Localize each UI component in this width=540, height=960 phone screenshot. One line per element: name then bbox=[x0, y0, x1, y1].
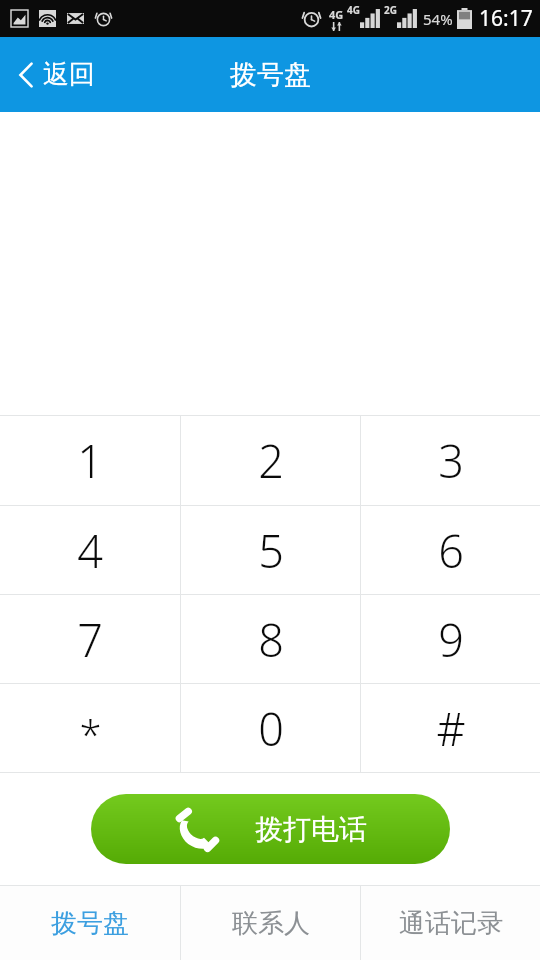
staticText: 0 bbox=[258, 698, 284, 759]
staticText: 拨打电话 bbox=[255, 812, 367, 847]
button[interactable]: # bbox=[361, 684, 540, 772]
staticText: 联系人 bbox=[232, 907, 310, 940]
staticText: 54% bbox=[423, 9, 453, 29]
button[interactable]: 返回 bbox=[0, 50, 113, 99]
staticText: 4G bbox=[329, 7, 344, 22]
staticText: 3 bbox=[438, 430, 464, 491]
staticText: 2 bbox=[258, 430, 284, 491]
staticText: 1 bbox=[77, 430, 103, 491]
staticText: 拨号盘 bbox=[51, 907, 129, 940]
button[interactable]: 通话记录 bbox=[361, 886, 540, 960]
staticText: * bbox=[79, 707, 102, 761]
staticText: 4 bbox=[77, 520, 103, 581]
button[interactable]: 7 bbox=[0, 595, 180, 683]
button[interactable]: 拨号盘 bbox=[0, 886, 180, 960]
button[interactable]: 2 bbox=[181, 416, 360, 505]
button[interactable]: 9 bbox=[361, 595, 540, 683]
button[interactable]: 8 bbox=[181, 595, 360, 683]
staticText: 通话记录 bbox=[399, 907, 503, 940]
staticText: 返回 bbox=[43, 58, 95, 91]
button[interactable]: 0 bbox=[181, 684, 360, 772]
button[interactable]: 6 bbox=[361, 506, 540, 594]
staticText: 16:17 bbox=[479, 4, 533, 33]
button[interactable]: 1 bbox=[0, 416, 180, 505]
button[interactable]: 拨打电话 bbox=[91, 794, 450, 864]
staticText: 7 bbox=[77, 609, 103, 670]
staticText: 2G bbox=[384, 3, 397, 17]
staticText: 9 bbox=[438, 609, 464, 670]
staticText: 8 bbox=[258, 609, 284, 670]
button[interactable]: 4 bbox=[0, 506, 180, 594]
staticText: 4G bbox=[347, 3, 360, 17]
staticText: 5 bbox=[258, 520, 284, 581]
button[interactable]: * bbox=[0, 684, 180, 772]
staticText: 6 bbox=[438, 520, 464, 581]
button[interactable]: 联系人 bbox=[181, 886, 360, 960]
staticText: 拨号盘 bbox=[230, 58, 311, 92]
button[interactable]: 3 bbox=[361, 416, 540, 505]
staticText: # bbox=[436, 698, 466, 759]
button[interactable]: 5 bbox=[181, 506, 360, 594]
